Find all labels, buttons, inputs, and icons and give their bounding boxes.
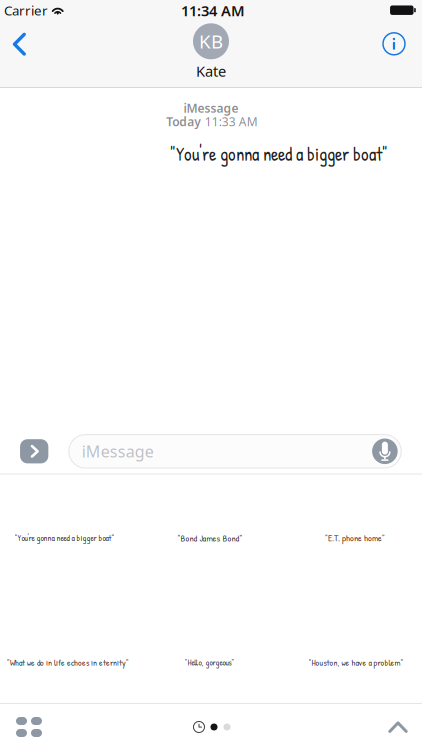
button[interactable]: "You're gonna need a bigger boat" xyxy=(0,481,134,595)
staticText: "E.T. phone home" xyxy=(325,532,385,544)
button[interactable]: Details xyxy=(372,22,416,66)
staticText: Today xyxy=(166,113,201,129)
staticText: "Bond James Bond" xyxy=(177,532,242,544)
button[interactable]: iMessage xyxy=(69,435,401,468)
staticText: "What we do in life echoes in eternity" xyxy=(7,656,129,668)
button[interactable]: Kate xyxy=(174,28,248,84)
button[interactable]: Apps xyxy=(20,439,48,463)
button[interactable]: Back xyxy=(0,22,42,66)
staticText: 11:34 AM xyxy=(181,1,245,20)
button[interactable]: Expand xyxy=(372,704,422,750)
staticText: "Hello, gorgeous" xyxy=(184,657,234,668)
staticText: "You're gonna need a bigger boat" xyxy=(14,532,114,544)
button[interactable]: "Bond James Bond" xyxy=(140,481,280,595)
button[interactable]: "What we do in life echoes in eternity" xyxy=(0,605,138,719)
staticText: iMessage xyxy=(82,441,154,462)
staticText: 11:33 AM xyxy=(205,113,258,129)
staticText: Kate xyxy=(196,61,226,81)
staticText: iMessage xyxy=(183,100,238,116)
button[interactable]: "Houston, we have a problem" xyxy=(286,605,422,719)
staticText: "You're gonna need a bigger boat" xyxy=(170,141,388,167)
button[interactable]: App drawer xyxy=(0,704,59,750)
button[interactable]: "E.T. phone home" xyxy=(285,481,422,595)
button[interactable]: "Hello, gorgeous" xyxy=(139,605,279,719)
staticText: Carrier xyxy=(4,1,48,19)
staticText: KB xyxy=(199,29,223,54)
staticText: "Houston, we have a problem" xyxy=(308,656,403,668)
